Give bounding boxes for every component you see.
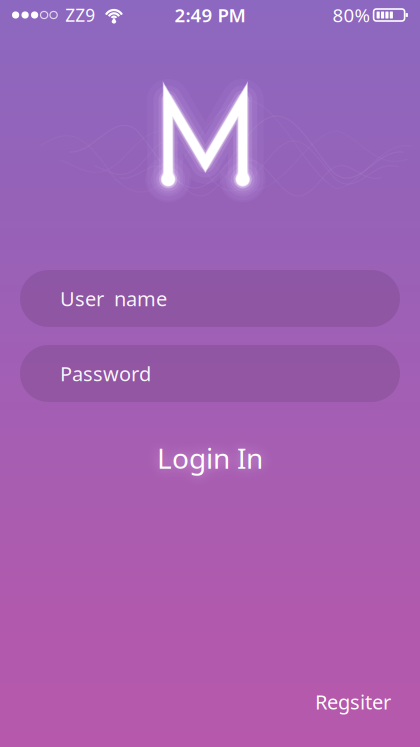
staticText: 80% xyxy=(333,3,371,27)
staticText: Password xyxy=(60,360,151,387)
staticText: Login In xyxy=(157,439,263,477)
staticText: 2:49 PM xyxy=(174,3,245,27)
staticText: User name xyxy=(60,285,167,312)
button[interactable]: Login In xyxy=(100,438,320,478)
button[interactable]: Password xyxy=(20,345,400,402)
staticText: ZZ9 xyxy=(65,3,95,26)
button[interactable]: User name xyxy=(20,270,400,327)
staticText: Regsiter xyxy=(315,688,391,715)
button[interactable]: Regsiter xyxy=(315,682,420,721)
